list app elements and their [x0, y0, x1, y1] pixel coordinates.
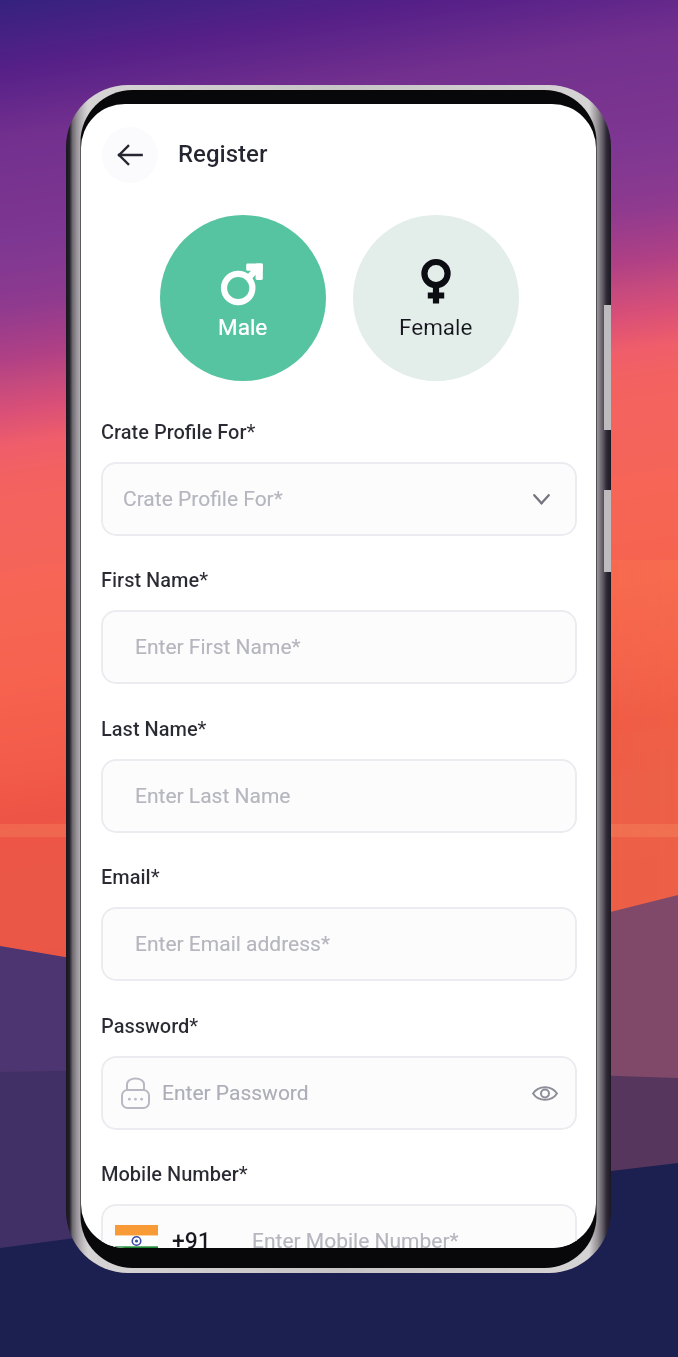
- staticText: Crate Profile For*: [101, 420, 256, 443]
- staticText: First Name*: [101, 568, 209, 591]
- staticText: Enter Password: [162, 1081, 309, 1106]
- button[interactable]: +91: [101, 1204, 577, 1248]
- staticText: Mobile Number*: [101, 1162, 248, 1185]
- staticText: Enter First Name*: [135, 635, 301, 660]
- button[interactable]: Back: [102, 127, 158, 183]
- button[interactable]: Crate Profile For*: [101, 462, 577, 536]
- staticText: Crate Profile For*: [123, 487, 283, 512]
- staticText: Email*: [101, 865, 160, 888]
- button[interactable]: Show password: [528, 1076, 562, 1110]
- staticText: Female: [399, 314, 473, 340]
- staticText: Enter Mobile Number*: [252, 1229, 459, 1248]
- staticText: Last Name*: [101, 717, 207, 740]
- other: Expand: [533, 493, 550, 505]
- button[interactable]: Enter Email address*: [101, 907, 577, 981]
- staticText: Password*: [101, 1014, 199, 1037]
- button[interactable]: Female: [353, 215, 519, 381]
- staticText: Enter Email address*: [135, 932, 330, 957]
- staticText: Register: [178, 140, 268, 168]
- staticText: Enter Last Name: [135, 784, 291, 809]
- staticText: Male: [218, 314, 268, 340]
- button[interactable]: Enter Last Name: [101, 759, 577, 833]
- button[interactable]: Enter First Name*: [101, 610, 577, 684]
- button[interactable]: Enter Password: [101, 1056, 577, 1130]
- staticText: +91: [172, 1228, 211, 1248]
- button[interactable]: Male: [160, 215, 326, 381]
